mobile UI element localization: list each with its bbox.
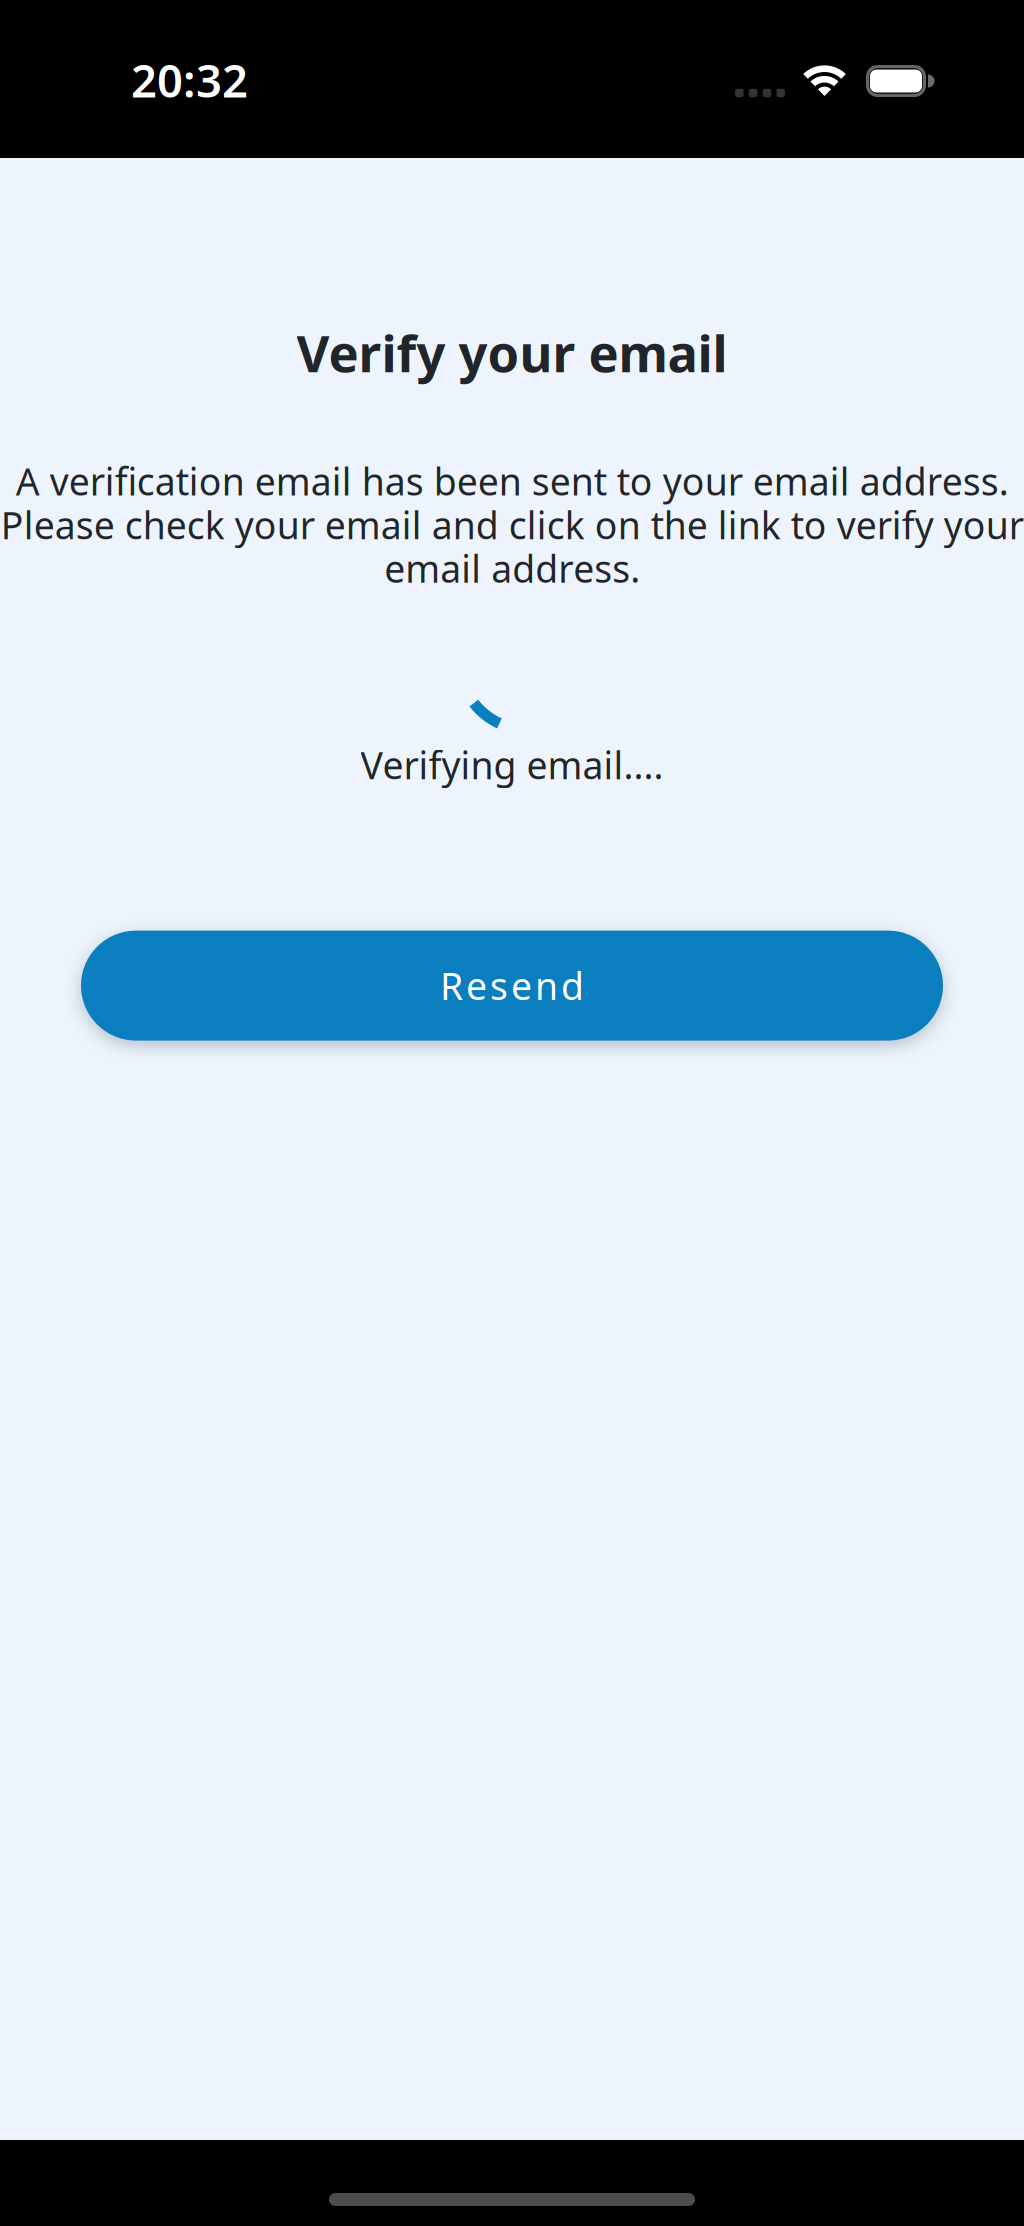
button[interactable]: Resend	[81, 931, 943, 1041]
staticText: Resend	[440, 961, 584, 1010]
staticText: Verifying email....	[360, 740, 663, 790]
staticText: A verification email has been sent to yo…	[0, 456, 1023, 593]
staticText: Verify your email	[296, 319, 727, 386]
staticText: 20:32	[131, 50, 248, 110]
